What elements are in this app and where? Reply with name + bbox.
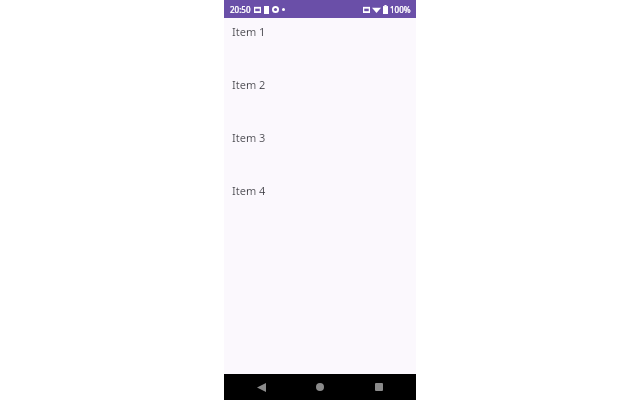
button[interactable]: Item 4	[224, 177, 416, 230]
staticText: Item 3	[232, 130, 266, 145]
button[interactable]: Home	[307, 374, 333, 400]
button[interactable]: Item 2	[224, 71, 416, 124]
button[interactable]: Item 1	[224, 18, 416, 71]
staticText: 100%	[390, 4, 411, 15]
staticText: Item 1	[232, 24, 266, 39]
button[interactable]: Recent apps	[366, 374, 392, 400]
staticText: Item 4	[232, 183, 266, 198]
button[interactable]: Item 3	[224, 124, 416, 177]
staticText: 20:50	[230, 4, 251, 15]
button[interactable]: Back	[248, 374, 274, 400]
staticText: Item 2	[232, 77, 266, 92]
